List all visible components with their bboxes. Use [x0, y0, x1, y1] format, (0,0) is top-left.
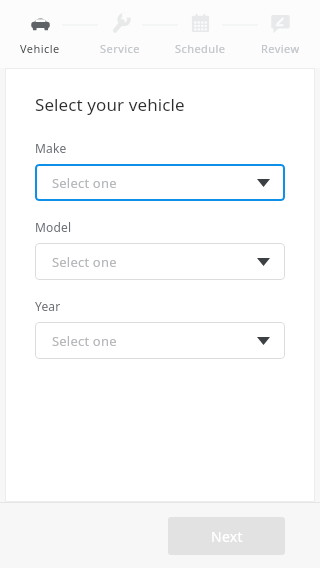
button[interactable]: Vehicle — [0, 0, 80, 68]
other: Review — [270, 13, 291, 34]
button[interactable]: Schedule — [160, 0, 240, 68]
other: Vehicle — [30, 13, 51, 34]
other: Schedule — [190, 13, 211, 34]
staticText: Review — [261, 41, 300, 56]
staticText: Make — [35, 140, 67, 156]
staticText: Service — [100, 41, 140, 56]
staticText: Year — [35, 298, 61, 314]
other: Service — [110, 13, 131, 34]
staticText: Select one — [52, 332, 257, 350]
staticText: Schedule — [175, 41, 226, 56]
staticText: Select one — [52, 174, 257, 192]
staticText: Select one — [52, 253, 257, 271]
staticText: Select your vehicle — [35, 93, 185, 116]
button[interactable]: Next — [168, 517, 285, 555]
button[interactable]: Select one — [35, 243, 285, 280]
button[interactable]: Review — [240, 0, 320, 68]
staticText: Model — [35, 219, 72, 235]
button[interactable]: Select one — [35, 322, 285, 359]
staticText: Next — [211, 527, 243, 546]
button[interactable]: Select one — [35, 164, 285, 201]
staticText: Vehicle — [20, 41, 60, 56]
button[interactable]: Service — [80, 0, 160, 68]
